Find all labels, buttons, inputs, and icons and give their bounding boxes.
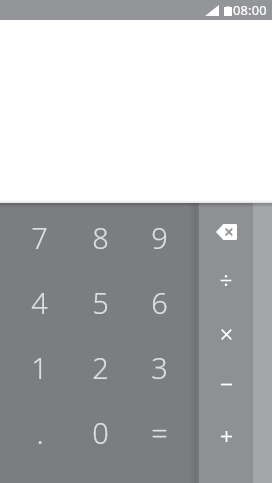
button[interactable]: 7	[0, 205, 67, 270]
staticText: 4	[31, 283, 48, 322]
button[interactable]: =	[133, 400, 199, 465]
button[interactable]: Divide	[199, 255, 253, 306]
staticText: 0	[92, 413, 109, 452]
staticText: 8	[92, 218, 109, 257]
button[interactable]: Backspace	[199, 206, 253, 257]
button[interactable]: 3	[133, 335, 199, 400]
other: Divide	[220, 275, 232, 286]
other: Multiply	[221, 329, 232, 340]
staticText: 5	[92, 283, 109, 322]
button[interactable]: .	[0, 400, 67, 465]
other: Plus	[221, 431, 232, 442]
staticText: 6	[151, 283, 168, 322]
button[interactable]: 2	[67, 335, 133, 400]
staticText: =	[151, 413, 168, 452]
staticText: 2	[92, 348, 109, 387]
button[interactable]: Multiply	[199, 309, 253, 360]
button[interactable]: Plus	[199, 411, 253, 462]
other: Backspace	[216, 224, 237, 240]
other: Battery	[224, 6, 232, 16]
staticText: 08:00	[233, 1, 267, 18]
staticText: .	[36, 413, 44, 452]
staticText: 7	[31, 218, 48, 257]
button[interactable]: Minus	[199, 359, 253, 410]
button[interactable]: 1	[0, 335, 67, 400]
button[interactable]: 6	[133, 270, 199, 335]
staticText: 1	[31, 348, 48, 387]
button[interactable]: 0	[67, 400, 133, 465]
button[interactable]: 4	[0, 270, 67, 335]
other: Signal strength	[205, 5, 219, 16]
button[interactable]: 5	[67, 270, 133, 335]
staticText: 3	[151, 348, 168, 387]
staticText: 9	[151, 218, 168, 257]
button[interactable]: 8	[67, 205, 133, 270]
other: Minus	[221, 379, 232, 390]
button[interactable]: 9	[133, 205, 199, 270]
